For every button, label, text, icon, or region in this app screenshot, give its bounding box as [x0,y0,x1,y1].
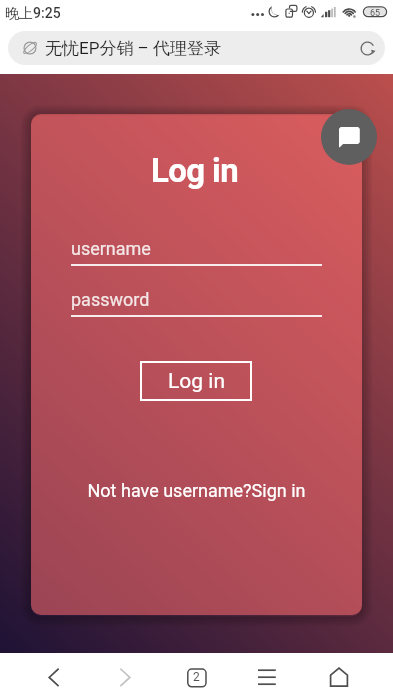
button[interactable]: password [71,289,322,319]
button[interactable]: Back [27,653,81,700]
button[interactable]: Log in [140,361,252,401]
button[interactable]: Chat [321,109,377,165]
button[interactable]: Not have username?Sign in [31,480,362,501]
staticText: password [71,289,150,310]
button[interactable]: Home [313,653,367,700]
button[interactable]: Refresh [350,31,384,65]
button[interactable]: username [71,238,322,268]
staticText: 65 [363,8,387,17]
button[interactable]: Tabs [169,653,223,700]
staticText: 晚上9:25 [5,5,61,23]
button[interactable]: Menu [240,653,294,700]
button[interactable]: 无忧EP分销 – 代理登录 [8,31,385,65]
staticText: username [71,238,151,259]
button[interactable]: Forward [98,653,152,700]
staticText: Log in [31,151,360,190]
staticText: 2 [193,670,200,684]
staticText: 无忧EP分销 – 代理登录 [45,38,221,59]
staticText: Log in [168,369,225,394]
